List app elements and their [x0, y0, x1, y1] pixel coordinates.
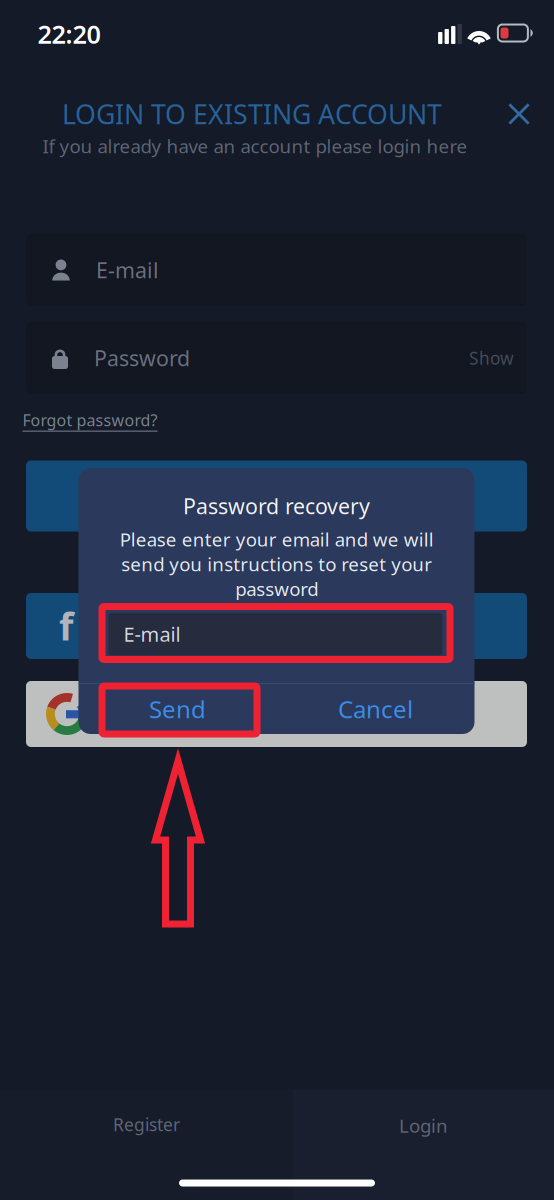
staticText: Show — [469, 346, 514, 369]
staticText: Cancel — [338, 693, 413, 725]
staticText: f — [59, 601, 73, 651]
button[interactable]: E-mail — [26, 234, 527, 306]
staticText: LOGIN — [244, 483, 309, 509]
button[interactable]: Password — [26, 322, 527, 394]
button[interactable]: Login with Facebook — [26, 593, 527, 659]
button[interactable]: Register — [0, 1090, 293, 1200]
staticText: Password — [94, 344, 190, 372]
button[interactable]: Login — [293, 1090, 554, 1200]
staticText: Send — [149, 693, 206, 725]
button[interactable]: Login — [26, 460, 527, 531]
staticText: E-mail — [96, 256, 159, 284]
button[interactable]: Login with Google — [26, 681, 527, 747]
staticText: Login with Google — [89, 701, 268, 727]
button[interactable]: E-mail — [108, 613, 442, 655]
button[interactable]: Forgot password? — [18, 405, 161, 435]
button[interactable]: Close — [495, 90, 543, 138]
staticText: 22:20 — [37, 17, 100, 51]
staticText: Forgot password? — [22, 409, 157, 431]
staticText: E-mail — [123, 621, 180, 647]
staticText: Password recovery — [183, 492, 370, 520]
staticText: Register — [113, 1113, 180, 1136]
button[interactable]: Cancel — [276, 684, 474, 734]
button[interactable]: Send — [78, 684, 276, 734]
staticText: Please enter your email and we will send… — [119, 527, 433, 601]
staticText: If you already have an account please lo… — [42, 134, 467, 158]
staticText: Login — [399, 1113, 448, 1138]
staticText: LOGIN TO EXISTING ACCOUNT — [62, 96, 442, 132]
staticText: Login with Facebook — [87, 613, 290, 639]
